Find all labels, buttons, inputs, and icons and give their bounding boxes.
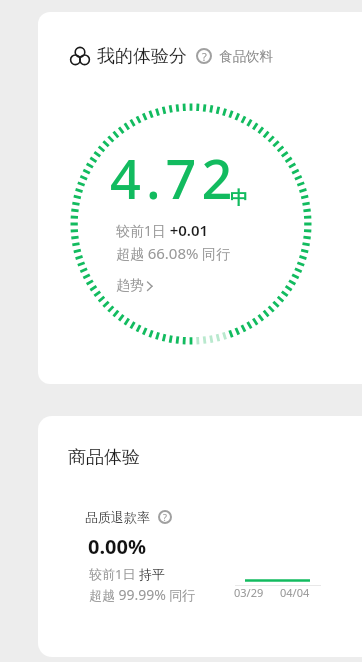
staticText: 较前1日 +0.01 xyxy=(116,220,209,240)
staticText: 较前1日 持平 xyxy=(89,565,165,583)
staticText: 趋势 xyxy=(116,277,144,295)
staticText: ? xyxy=(202,49,207,64)
staticText: 04/04 xyxy=(280,585,310,600)
staticText: 03/29 xyxy=(234,585,264,600)
staticText: ? xyxy=(163,511,167,523)
button[interactable]: 趋势 xyxy=(116,277,156,295)
button[interactable]: 品质退款率 xyxy=(38,504,362,531)
button[interactable]: 我的体验分 xyxy=(70,45,273,67)
staticText: 超越 66.08% 同行 xyxy=(116,243,231,263)
staticText: 超越 99.99% 同行 xyxy=(89,585,196,604)
staticText: 0.00% xyxy=(88,533,146,560)
staticText: 品质退款率 xyxy=(85,509,150,525)
staticText: 我的体验分 xyxy=(97,45,187,67)
staticText: 4.72 xyxy=(110,141,238,215)
staticText: 中 xyxy=(230,187,248,210)
staticText: 商品体验 xyxy=(68,446,140,469)
staticText: 食品饮料 xyxy=(219,48,273,65)
